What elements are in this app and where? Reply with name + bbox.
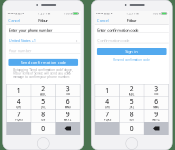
staticText: 9 [66, 109, 70, 118]
staticText: 1 [105, 86, 109, 95]
staticText: 4 [105, 97, 109, 106]
staticText: By tapping "Send confirmation code" abov… [13, 68, 73, 79]
staticText: GHI [16, 105, 21, 109]
staticText: ABC [129, 93, 135, 96]
staticText: Enter your phone number [9, 27, 53, 33]
button[interactable]: 4 [95, 97, 119, 109]
staticText: TUV [129, 118, 134, 121]
button[interactable]: Cancel [95, 16, 111, 25]
button[interactable]: 5 [120, 97, 144, 109]
staticText: Fitbur [38, 18, 48, 23]
staticText: WXYZ [64, 118, 72, 121]
button[interactable]: 8 [31, 110, 55, 122]
button[interactable]: 7 [95, 110, 119, 122]
staticText: 3 [66, 84, 70, 93]
staticText: PQRS [15, 118, 22, 121]
staticText: WXYZ [152, 118, 160, 121]
staticText: Enter confirmation code [97, 27, 138, 33]
staticText: 8 [41, 109, 45, 118]
staticText: DEF [154, 93, 158, 96]
staticText: 7 [17, 109, 21, 118]
button[interactable]: Delete [144, 122, 168, 135]
staticText: 0 [130, 124, 134, 133]
staticText: 2 [130, 84, 134, 93]
staticText: ▾ [110, 12, 112, 15]
button[interactable]: 8 [120, 110, 144, 122]
staticText: 5 [41, 97, 45, 106]
staticText: TUV [41, 118, 46, 121]
staticText: JKL [130, 105, 134, 109]
button[interactable]: 3 [144, 84, 168, 97]
button[interactable]: 6 [56, 97, 80, 109]
staticText: PQRS [104, 118, 111, 121]
button[interactable]: Delete [56, 122, 80, 135]
button[interactable]: 0 [120, 122, 144, 135]
staticText: Confirmation code [97, 38, 129, 43]
staticText: Sign in [125, 49, 138, 54]
staticText: DEF [66, 93, 70, 96]
staticText: GHI [105, 105, 110, 109]
staticText: › [76, 37, 78, 44]
staticText: 8 [130, 109, 134, 118]
button[interactable]: 4 [7, 97, 31, 109]
button[interactable]: Sign in [97, 48, 167, 55]
staticText: ABC [40, 93, 46, 96]
staticText: 7 [105, 109, 109, 118]
staticText: 6 [154, 97, 158, 106]
staticText: MNO [153, 105, 159, 109]
button[interactable]: Send confirmation code [8, 59, 78, 66]
staticText: ▾ [21, 12, 23, 15]
staticText: AT&T [103, 12, 110, 15]
staticText: Send confirmation code [21, 60, 66, 65]
staticText: 3 [154, 84, 158, 93]
staticText: Cancel [97, 18, 109, 23]
staticText: 1 [17, 86, 21, 95]
staticText: United States +1 [9, 38, 36, 43]
button[interactable]: 3 [56, 84, 80, 97]
staticText: Fitbur [127, 18, 137, 23]
staticText: Cancel [8, 18, 20, 23]
button[interactable]: Cancel [6, 16, 22, 25]
staticText: 1:29 PM [126, 12, 138, 15]
staticText: 100% [64, 12, 73, 15]
staticText: MNO [65, 105, 71, 109]
staticText: AT&T [15, 12, 22, 15]
button[interactable]: 1 [7, 84, 31, 97]
button[interactable]: 9 [144, 110, 168, 122]
staticText: 9 [154, 109, 158, 118]
staticText: JKL [41, 105, 45, 109]
button[interactable]: 5 [31, 97, 55, 109]
staticText: 100% [152, 12, 161, 15]
button[interactable]: 7 [7, 110, 31, 122]
staticText: 2 [41, 84, 45, 93]
staticText: 4 [17, 97, 21, 106]
button[interactable]: 0 [31, 122, 55, 135]
button[interactable]: 1 [95, 84, 119, 97]
staticText: 0 [41, 124, 45, 133]
button[interactable]: 2 [31, 84, 55, 97]
button[interactable]: Resend confirmation code [95, 55, 169, 63]
staticText: 6 [66, 97, 70, 106]
staticText: 5 [130, 97, 134, 106]
button[interactable]: 6 [144, 97, 168, 109]
staticText: Your number [9, 48, 32, 53]
button[interactable]: 2 [120, 84, 144, 97]
staticText: 1:29 PM [38, 12, 50, 15]
button[interactable]: 9 [56, 110, 80, 122]
staticText: Resend confirmation code [113, 58, 150, 62]
